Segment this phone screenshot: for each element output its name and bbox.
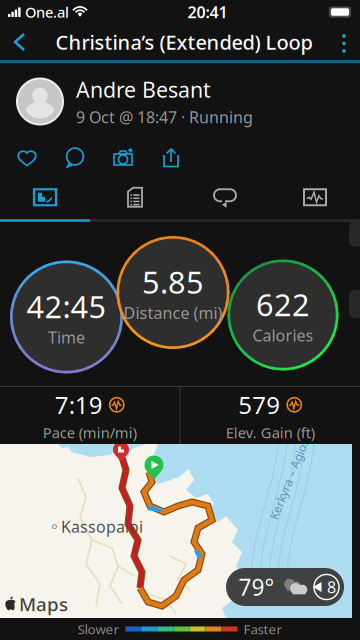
staticText: Christina’s (Extended) Loop <box>55 29 312 55</box>
staticText: Time <box>48 327 85 348</box>
staticText: 9 Oct @ 18:47 · Running <box>76 106 253 128</box>
staticText: Calories <box>252 325 313 346</box>
staticText: Elev. Gain (ft) <box>226 423 315 442</box>
staticText: Andre Besant <box>76 75 211 103</box>
staticText: 8 <box>327 576 336 598</box>
button[interactable]: Back <box>0 24 40 60</box>
button[interactable]: Share <box>158 144 184 170</box>
staticText: Kassopaioi <box>61 516 143 537</box>
button[interactable]: Charts <box>270 179 360 215</box>
staticText: 79° <box>238 572 274 602</box>
staticText: One.al <box>25 2 69 22</box>
button[interactable]: Summary <box>0 179 90 215</box>
staticText: Slower <box>77 620 119 638</box>
button[interactable]: Add photo <box>110 144 136 170</box>
button[interactable]: Comment <box>62 144 88 170</box>
staticText: Pace (min/mi) <box>43 423 137 442</box>
button[interactable]: Details <box>90 179 180 215</box>
staticText: 5.85 <box>142 261 204 302</box>
staticText: Maps <box>19 592 68 616</box>
staticText: 622 <box>256 284 310 325</box>
staticText: Faster <box>243 620 282 638</box>
staticText: Distance (mi) <box>123 302 222 323</box>
staticText: 579 <box>238 389 280 421</box>
staticText: 7:19 <box>55 389 103 421</box>
staticText: 42:45 <box>26 286 106 327</box>
staticText: Kerkyra – Agios <box>246 471 332 487</box>
staticText: 20:41 <box>187 1 227 23</box>
button[interactable]: Laps <box>180 179 270 215</box>
button[interactable]: Like <box>14 144 40 170</box>
button[interactable]: More options <box>328 24 360 60</box>
